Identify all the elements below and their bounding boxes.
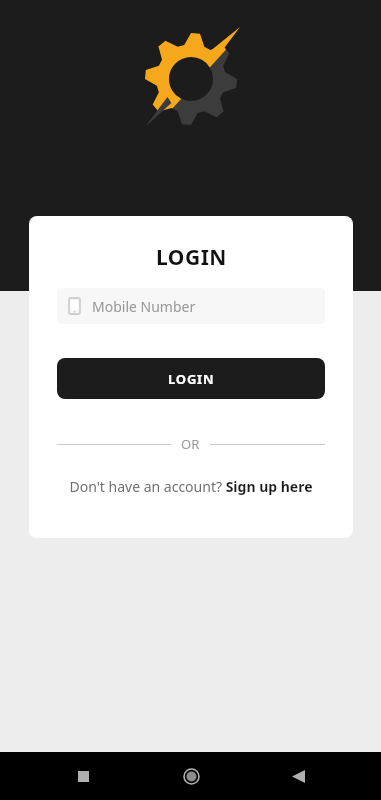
button[interactable]: Back — [274, 752, 322, 800]
button[interactable]: Don't have an account? Sign up here — [29, 477, 353, 496]
button[interactable]: Recent apps — [59, 752, 107, 800]
staticText: Don't have an account? Sign up here — [69, 477, 313, 496]
button[interactable]: Home — [167, 752, 215, 800]
staticText: Mobile Number — [92, 297, 196, 316]
other: App logo — [142, 27, 240, 127]
staticText: OR — [181, 435, 200, 453]
staticText: LOGIN — [156, 243, 227, 272]
staticText: LOGIN — [168, 370, 215, 388]
button[interactable]: Mobile Number — [57, 288, 325, 324]
button[interactable]: LOGIN — [57, 358, 325, 399]
